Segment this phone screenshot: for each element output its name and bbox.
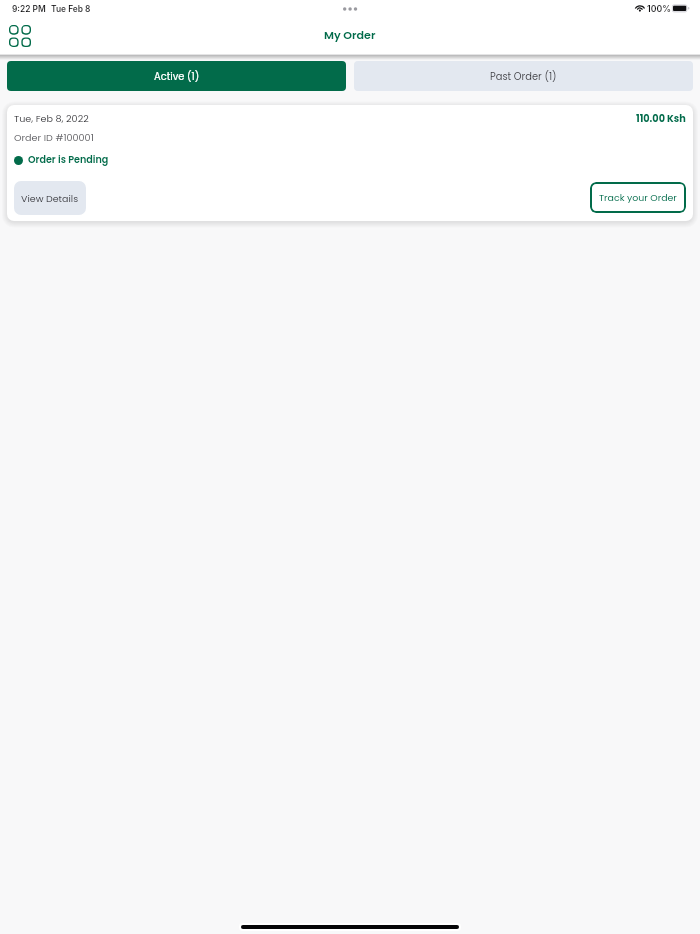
- staticText: Track your Order: [599, 191, 677, 204]
- staticText: My Order: [324, 27, 376, 43]
- button[interactable]: Track your Order: [590, 182, 686, 213]
- staticText: 100%: [647, 4, 671, 15]
- staticText: Active (1): [154, 70, 200, 84]
- button[interactable]: Menu: [5, 21, 34, 50]
- staticText: Past Order (1): [490, 70, 557, 84]
- staticText: 110.00 Ksh: [636, 112, 686, 126]
- staticText: Order is Pending: [28, 153, 109, 166]
- button[interactable]: View Details: [14, 181, 86, 215]
- staticText: Tue Feb 8: [51, 4, 91, 14]
- staticText: Order ID #100001: [14, 131, 94, 144]
- staticText: 9:22 PM: [12, 4, 46, 14]
- button[interactable]: Active (1): [7, 61, 346, 91]
- button[interactable]: Tue, Feb 8, 2022: [7, 105, 693, 221]
- staticText: Tue, Feb 8, 2022: [14, 112, 89, 125]
- button[interactable]: Past Order (1): [354, 61, 693, 91]
- staticText: View Details: [21, 192, 79, 205]
